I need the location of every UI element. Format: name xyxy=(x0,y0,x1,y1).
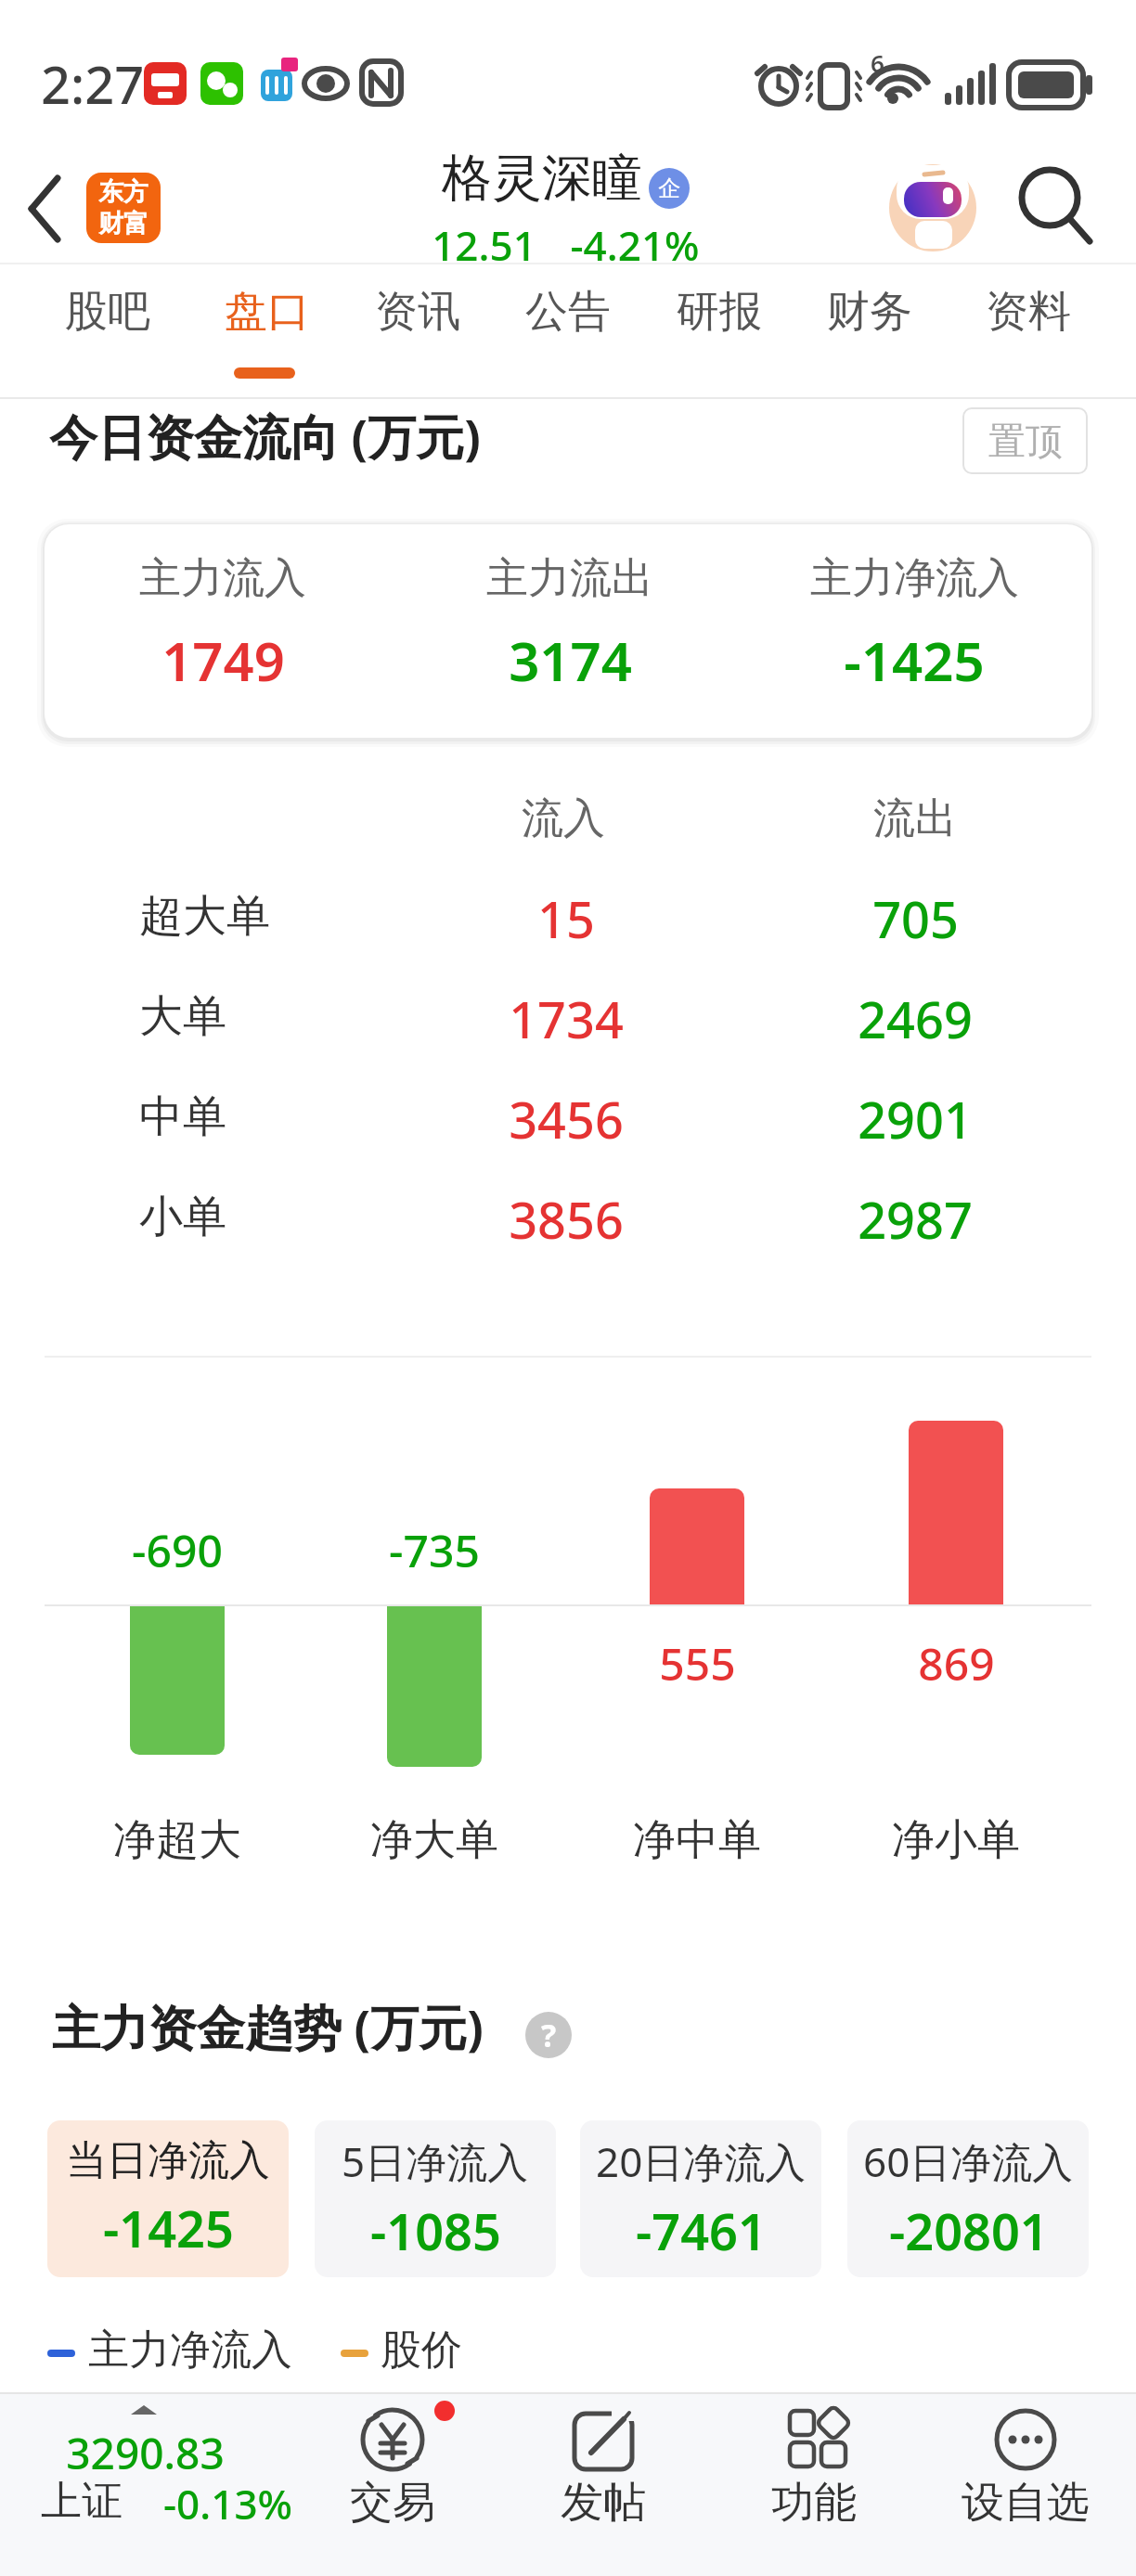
staticText: 发帖 xyxy=(561,2476,646,2530)
staticText: 置顶 xyxy=(988,418,1063,464)
staticText: -4.21% xyxy=(570,217,700,273)
staticText: 主力净流入 xyxy=(810,552,1019,605)
staticText: 555 xyxy=(659,1633,736,1694)
button[interactable]: 60日净流入 xyxy=(847,2120,1089,2277)
staticText: 2469 xyxy=(858,985,973,1053)
button[interactable]: 资料 xyxy=(954,275,1103,349)
button[interactable] xyxy=(1012,158,1104,251)
staticText: -7461 xyxy=(636,2196,767,2265)
staticText: -20801 xyxy=(889,2196,1049,2265)
staticText: 1749 xyxy=(161,624,285,697)
button[interactable]: ? xyxy=(525,2012,572,2058)
staticText: 15 xyxy=(537,884,595,953)
staticText: 869 xyxy=(918,1633,995,1694)
button[interactable]: 20日净流入 xyxy=(580,2120,821,2277)
staticText: 60日净流入 xyxy=(863,2133,1074,2189)
staticText: 主力流入 xyxy=(139,552,306,605)
staticText: 3290.83 xyxy=(66,2424,225,2482)
staticText: 流入 xyxy=(522,792,605,845)
staticText: 研报 xyxy=(677,285,762,339)
staticText: 大单 xyxy=(139,989,226,1044)
staticText: 5日净流入 xyxy=(342,2133,529,2189)
staticText: 主力资金趋势 (万元) xyxy=(52,1993,484,2059)
staticText: 6 xyxy=(871,46,884,79)
button[interactable]: 盘口 xyxy=(193,275,342,349)
staticText: 当日净流入 xyxy=(66,2135,270,2186)
button[interactable]: 资讯 xyxy=(343,275,492,349)
staticText: 公告 xyxy=(525,285,611,339)
staticText: 净中单 xyxy=(633,1813,761,1867)
staticText: 盘口 xyxy=(225,285,310,339)
staticText: 主力净流入 xyxy=(88,2325,292,2376)
staticText: 3456 xyxy=(509,1085,624,1153)
staticText: 净大单 xyxy=(370,1813,498,1867)
button[interactable] xyxy=(28,2394,297,2576)
staticText: 净小单 xyxy=(892,1813,1020,1867)
staticText: 3174 xyxy=(509,624,632,697)
staticText: 2987 xyxy=(858,1185,973,1254)
staticText: 小单 xyxy=(139,1190,226,1244)
staticText: 1734 xyxy=(509,985,624,1053)
button[interactable] xyxy=(740,2394,888,2576)
staticText: 流出 xyxy=(873,792,957,845)
staticText: 上证 xyxy=(41,2476,123,2527)
button[interactable]: 置顶 xyxy=(962,407,1088,474)
staticText: 股价 xyxy=(381,2325,462,2376)
staticText: 中单 xyxy=(139,1089,226,1144)
staticText: 财务 xyxy=(827,285,912,339)
staticText: 股吧 xyxy=(65,285,150,339)
staticText: 东方 xyxy=(98,176,148,208)
staticText: -690 xyxy=(132,1520,223,1580)
staticText: 主力流出 xyxy=(486,552,653,605)
button[interactable]: 东方 xyxy=(86,173,161,243)
button[interactable]: 股吧 xyxy=(33,275,182,349)
button[interactable] xyxy=(19,167,74,251)
staticText: 705 xyxy=(872,884,959,953)
staticText: -1425 xyxy=(103,2194,234,2262)
button[interactable]: 公告 xyxy=(494,275,642,349)
staticText: 资讯 xyxy=(375,285,460,339)
staticText: 12.51 xyxy=(432,217,536,273)
staticText: 2:27 xyxy=(41,48,145,119)
button[interactable]: 财务 xyxy=(795,275,944,349)
staticText: -1085 xyxy=(370,2196,501,2265)
staticText: -0.13% xyxy=(163,2476,293,2531)
button[interactable] xyxy=(318,2394,467,2576)
staticText: 设自选 xyxy=(962,2476,1090,2530)
button[interactable] xyxy=(529,2394,678,2576)
staticText: -735 xyxy=(389,1520,480,1580)
button[interactable]: 5日净流入 xyxy=(315,2120,556,2277)
button[interactable]: 研报 xyxy=(645,275,794,349)
staticText: 交易 xyxy=(350,2476,435,2530)
staticText: 企 xyxy=(658,174,680,202)
staticText: 格灵深瞳 xyxy=(442,147,642,210)
staticText: 净超大 xyxy=(113,1813,241,1867)
button[interactable] xyxy=(882,148,1002,269)
staticText: 功能 xyxy=(771,2476,857,2530)
staticText: -1425 xyxy=(844,624,985,697)
staticText: 今日资金流向 (万元) xyxy=(49,403,481,469)
staticText: 3856 xyxy=(509,1185,624,1254)
button[interactable] xyxy=(947,2394,1114,2576)
staticText: 20日净流入 xyxy=(596,2133,807,2189)
button[interactable]: 当日净流入 xyxy=(47,2120,289,2277)
staticText: 超大单 xyxy=(139,889,270,944)
staticText: 财富 xyxy=(98,208,148,239)
staticText: 2901 xyxy=(858,1085,973,1153)
staticText: ? xyxy=(541,2014,557,2056)
staticText: 资料 xyxy=(986,285,1071,339)
